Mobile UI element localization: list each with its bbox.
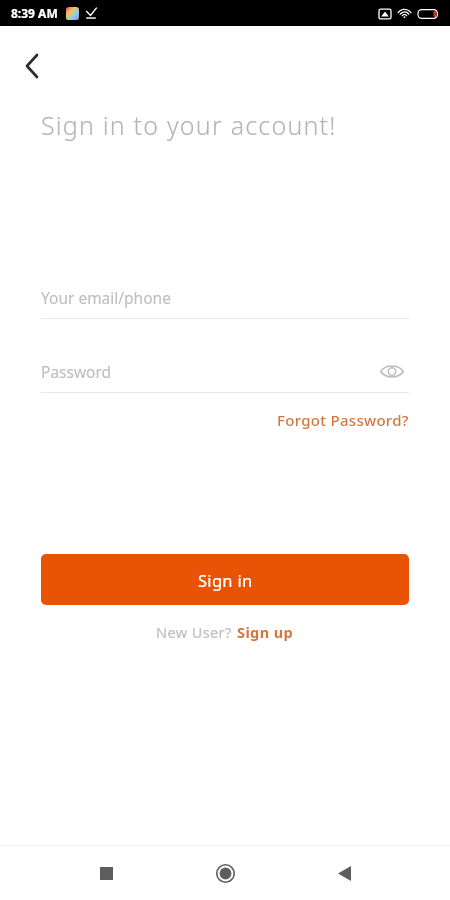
staticText: Password xyxy=(41,361,112,382)
staticText: Your email/phone xyxy=(41,287,171,308)
button[interactable]: Forgot Password? xyxy=(277,407,409,433)
staticText: 8:39 AM xyxy=(11,5,58,21)
button[interactable]: Sign up xyxy=(237,619,294,645)
staticText: Sign up xyxy=(237,622,294,642)
button[interactable]: Recents xyxy=(83,850,129,896)
staticText: Sign in to your account! xyxy=(41,108,337,142)
staticText: Sign in xyxy=(198,569,253,591)
button[interactable]: Back xyxy=(10,44,54,88)
staticText: Forgot Password? xyxy=(277,410,409,430)
button[interactable]: Sign in xyxy=(41,554,409,605)
button[interactable]: Home xyxy=(202,850,248,896)
button[interactable]: Password xyxy=(41,349,409,393)
button[interactable]: Show password xyxy=(375,354,409,388)
staticText: New User? xyxy=(156,622,232,642)
button[interactable]: Back xyxy=(321,850,367,896)
button[interactable]: Your email/phone xyxy=(41,275,409,319)
